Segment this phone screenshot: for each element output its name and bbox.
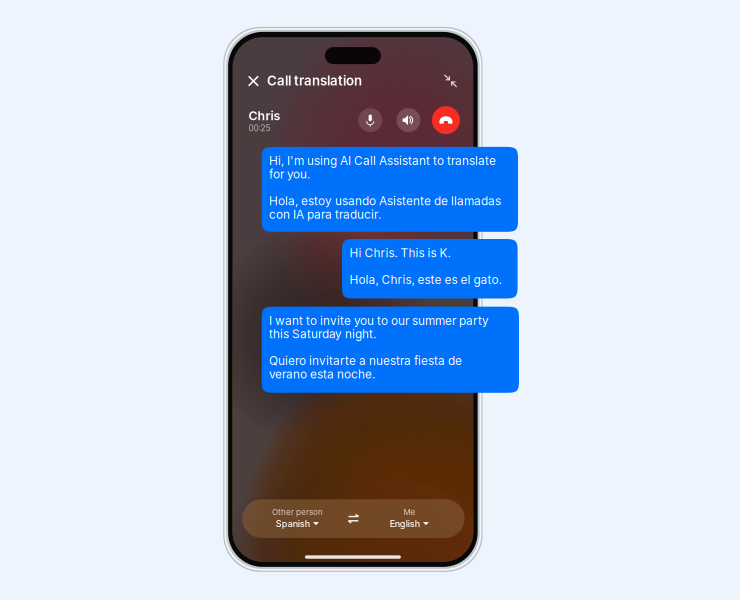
- button[interactable]: Close: [242, 70, 264, 92]
- button[interactable]: Me: [365, 507, 453, 531]
- staticText: Other person: [272, 507, 323, 517]
- staticText: Hi, I'm using AI Call Assistant to trans…: [269, 154, 496, 168]
- staticText: con IA para traducir.: [269, 207, 381, 222]
- staticText: Hi Chris. This is K.: [349, 246, 450, 260]
- staticText: Spanish: [276, 518, 310, 529]
- button[interactable]: Other person: [253, 507, 341, 531]
- staticText: for you.: [269, 167, 310, 181]
- staticText: Quiero invitarte a nuestra fiesta de: [269, 354, 462, 368]
- staticText: verano esta noche.: [269, 367, 375, 381]
- staticText: Me: [403, 507, 415, 517]
- button[interactable]: Swap languages: [341, 507, 365, 531]
- button[interactable]: Call translation: [267, 72, 365, 89]
- staticText: 00:25: [248, 123, 270, 133]
- staticText: I want to invite you to our summer party: [269, 313, 489, 328]
- staticText: Hola, Chris, este es el gato.: [349, 273, 501, 287]
- staticText: Call translation: [267, 73, 362, 89]
- button[interactable]: Minimise: [439, 70, 461, 92]
- button[interactable]: Mute: [358, 108, 382, 132]
- button[interactable]: End call: [432, 106, 460, 134]
- staticText: Hola, estoy usando Asistente de llamadas: [269, 194, 501, 208]
- staticText: Chris: [248, 108, 280, 123]
- button[interactable]: Speaker: [396, 108, 420, 132]
- staticText: this Saturday night.: [269, 327, 376, 341]
- staticText: English: [390, 518, 420, 529]
